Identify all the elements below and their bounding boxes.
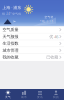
staticText: 空气优	[44, 15, 53, 19]
staticText: 已收藏	[46, 55, 58, 60]
button[interactable]: 我的收藏	[0, 54, 64, 61]
staticText: 天气预报	[2, 34, 18, 39]
button[interactable]: 城市	[16, 89, 32, 100]
button[interactable]: 我的	[48, 89, 64, 100]
staticText: 生活指数	[2, 41, 18, 46]
button[interactable]: 城市管理	[0, 47, 64, 54]
staticText: 我的	[53, 95, 59, 99]
staticText: PM2.5 18	[39, 19, 53, 23]
button[interactable]: 天气预报	[0, 33, 64, 40]
staticText: 晴 24° 空气优	[2, 12, 21, 15]
staticText: 城市管理	[2, 48, 18, 53]
staticText: 天气	[5, 95, 11, 99]
staticText: 优 46	[49, 34, 58, 39]
button[interactable]: 天气	[0, 89, 16, 100]
button[interactable]: 空气质量	[0, 26, 64, 33]
staticText: 空气质量	[2, 27, 18, 32]
staticText: 城市	[21, 95, 27, 99]
staticText: 我的收藏	[2, 55, 18, 60]
staticText: 资讯	[37, 95, 43, 99]
staticText: 上海 · 浦东	[2, 5, 21, 10]
button[interactable]: 资讯	[32, 89, 48, 100]
button[interactable]: 生活指数	[0, 40, 64, 47]
